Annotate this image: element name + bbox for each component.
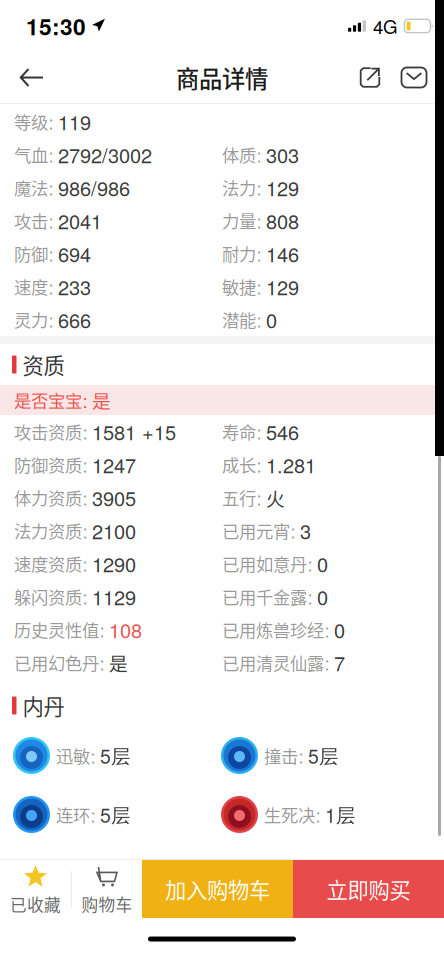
staticText: 成长 <box>222 452 256 477</box>
staticText: : <box>48 141 53 168</box>
staticText: 购物车 <box>81 892 132 916</box>
button[interactable]: 分享 <box>348 52 392 102</box>
staticText: 5层 <box>308 742 338 769</box>
staticText: 5层 <box>100 801 130 828</box>
staticText: 迅敏 <box>56 743 90 768</box>
staticText: : <box>307 583 312 610</box>
button[interactable]: 已收藏 <box>0 860 71 918</box>
staticText: 1247 <box>92 450 136 479</box>
staticText: 撞击 <box>264 743 298 768</box>
staticText: 3 <box>300 516 311 545</box>
staticText: 等级 <box>14 109 48 134</box>
staticText: 3905 <box>92 483 136 512</box>
button[interactable]: 返回 <box>6 52 58 102</box>
staticText: : <box>82 387 87 413</box>
staticText: : <box>324 616 329 643</box>
staticText: : <box>48 306 53 333</box>
staticText: : <box>99 616 104 643</box>
staticText: : <box>82 484 87 511</box>
staticText: 5层 <box>100 742 130 769</box>
staticText: 2100 <box>92 516 136 545</box>
staticText: : <box>48 174 53 201</box>
staticText: : <box>48 273 53 300</box>
staticText: 0 <box>266 305 277 334</box>
staticText: : <box>82 451 87 478</box>
staticText: 气血 <box>14 142 48 167</box>
staticText: 1129 <box>92 582 136 611</box>
button[interactable]: 消息 <box>392 52 436 102</box>
staticText: 魔法 <box>14 175 48 200</box>
staticText: 2041 <box>58 206 102 235</box>
staticText: 是 <box>92 386 111 413</box>
button[interactable]: 立即购买 <box>293 860 444 918</box>
staticText: 694 <box>58 239 91 268</box>
staticText: 力量 <box>222 208 256 233</box>
staticText: : <box>82 517 87 544</box>
staticText: 233 <box>58 272 91 301</box>
staticText: 129 <box>266 173 299 202</box>
staticText: : <box>307 550 312 577</box>
staticText: 1.281 <box>266 450 316 479</box>
staticText: : <box>290 517 295 544</box>
staticText: 已用炼兽珍经 <box>222 617 324 642</box>
staticText: 546 <box>266 417 299 446</box>
staticText: 已用千金露 <box>222 584 307 609</box>
staticText: 1层 <box>325 801 355 828</box>
staticText: 986/986 <box>58 173 130 202</box>
staticText: : <box>256 451 261 478</box>
staticText: 体力资质 <box>14 485 82 510</box>
staticText: 1290 <box>92 549 136 578</box>
staticText: 119 <box>58 107 91 136</box>
staticText: : <box>256 273 261 300</box>
staticText: : <box>90 742 95 769</box>
button[interactable]: 购物车 <box>72 860 142 918</box>
staticText: 火 <box>266 484 285 511</box>
staticText: : <box>298 742 303 769</box>
staticText: 历史灵性值 <box>14 617 99 642</box>
staticText: 商品详情 <box>176 61 268 94</box>
staticText: 已用元宵 <box>222 518 290 543</box>
staticText: 法力资质 <box>14 518 82 543</box>
staticText: 耐力 <box>222 241 256 266</box>
staticText: 1581 +15 <box>92 417 176 446</box>
staticText: 是 <box>109 649 128 676</box>
staticText: : <box>82 418 87 445</box>
staticText: : <box>256 174 261 201</box>
staticText: 五行 <box>222 485 256 510</box>
staticText: : <box>48 207 53 234</box>
staticText: 已用幻色丹 <box>14 650 99 675</box>
staticText: 已收藏 <box>10 892 61 916</box>
staticText: 生死决 <box>264 802 315 827</box>
staticText: 0 <box>334 615 345 644</box>
staticText: 防御资质 <box>14 452 82 477</box>
staticText: 108 <box>109 615 142 644</box>
staticText: : <box>82 583 87 610</box>
staticText: 129 <box>266 272 299 301</box>
staticText: : <box>90 801 95 828</box>
staticText: 潜能 <box>222 307 256 332</box>
staticText: 是否宝宝 <box>14 387 82 413</box>
staticText: 防御 <box>14 241 48 266</box>
staticText: 速度资质 <box>14 551 82 576</box>
staticText: 4G <box>373 13 398 39</box>
staticText: 已用清灵仙露 <box>222 650 324 675</box>
staticText: : <box>256 141 261 168</box>
button[interactable]: 加入购物车 <box>142 860 293 918</box>
staticText: : <box>48 108 53 135</box>
staticText: 808 <box>266 206 299 235</box>
staticText: : <box>315 801 320 828</box>
staticText: 寿命 <box>222 419 256 444</box>
staticText: 0 <box>317 549 328 578</box>
staticText: 法力 <box>222 175 256 200</box>
staticText: : <box>82 550 87 577</box>
staticText: 666 <box>58 305 91 334</box>
staticText: : <box>256 418 261 445</box>
staticText: 0 <box>317 582 328 611</box>
staticText: 速度 <box>14 274 48 299</box>
staticText: 立即购买 <box>326 874 410 904</box>
staticText: : <box>48 240 53 267</box>
staticText: 2792/3002 <box>58 140 152 169</box>
staticText: : <box>256 207 261 234</box>
staticText: : <box>324 649 329 676</box>
staticText: 内丹 <box>22 690 64 721</box>
